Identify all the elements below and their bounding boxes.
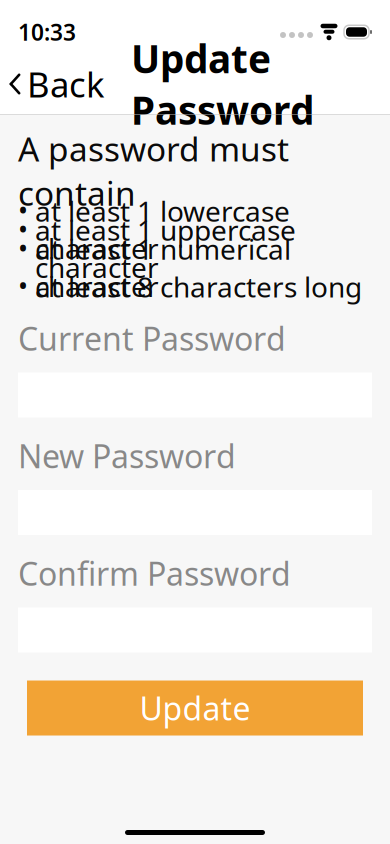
staticText: at least 8 characters long — [35, 268, 362, 305]
staticText: at least 1 lowercase character — [35, 192, 290, 267]
staticText: Current Password — [18, 317, 286, 359]
staticText: A password must contain — [18, 126, 289, 215]
staticText: Confirm Password — [18, 552, 291, 594]
button[interactable]: Back — [0, 54, 115, 114]
button[interactable]: Update — [27, 680, 363, 735]
staticText: • — [18, 268, 28, 303]
staticText: • — [18, 230, 28, 266]
staticText: Update — [139, 687, 250, 729]
staticText: at least 1 uppercase character — [35, 211, 296, 286]
staticText: 10:33 — [18, 17, 76, 47]
staticText: New Password — [18, 434, 236, 477]
staticText: Back — [27, 61, 105, 107]
staticText: Update Password — [131, 33, 314, 135]
staticText: • — [18, 211, 28, 247]
staticText: • — [18, 192, 28, 228]
staticText: at least 1 numerical character — [35, 230, 291, 305]
